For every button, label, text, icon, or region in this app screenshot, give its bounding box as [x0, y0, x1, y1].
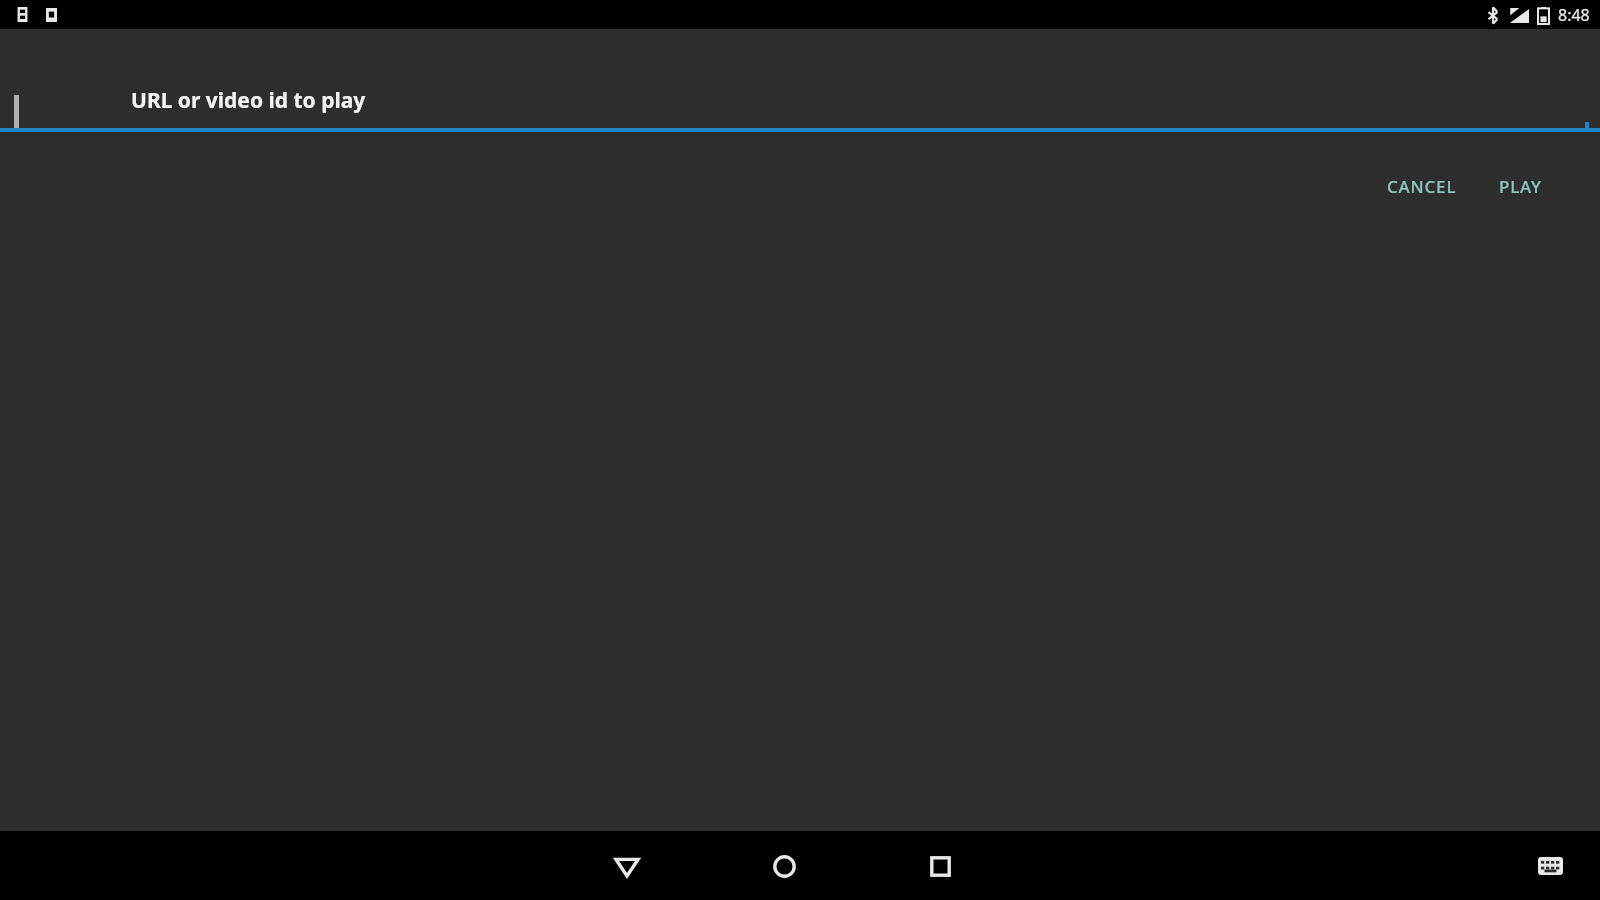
staticText: PLAY: [1499, 175, 1542, 198]
staticText: CANCEL: [1387, 175, 1457, 198]
button[interactable]: Switch keyboard: [1530, 846, 1570, 886]
staticText: 8:48: [1558, 4, 1590, 26]
staticText: URL or video id to play: [131, 86, 366, 115]
button[interactable]: Back: [605, 844, 649, 888]
button[interactable]: CANCEL: [1377, 169, 1467, 204]
button[interactable]: [0, 95, 1600, 131]
button[interactable]: PLAY: [1489, 169, 1552, 204]
button[interactable]: Recent apps: [918, 844, 962, 888]
button[interactable]: Home: [762, 844, 806, 888]
